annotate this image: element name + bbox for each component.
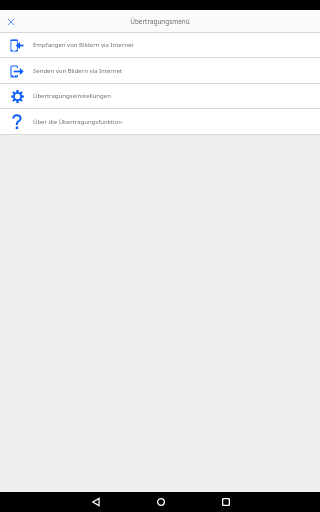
button[interactable]: Close xyxy=(3,14,19,30)
button[interactable]: Senden von Bildern via Internet xyxy=(0,58,320,83)
button[interactable]: Recent apps xyxy=(193,492,258,512)
button[interactable]: Home xyxy=(128,492,193,512)
button[interactable]: Über die Übertragungsfunktion xyxy=(0,109,320,134)
staticText: Über die Übertragungsfunktion xyxy=(33,118,122,126)
staticText: Übertragungseinstellungen xyxy=(33,92,111,100)
button[interactable]: Empfangen von Bildern via Internet xyxy=(0,33,320,57)
button[interactable]: Übertragungseinstellungen xyxy=(0,84,320,108)
staticText: Übertragungsmenü xyxy=(130,17,190,26)
staticText: Empfangen von Bildern via Internet xyxy=(33,41,134,49)
button[interactable]: Back xyxy=(63,492,128,512)
staticText: Senden von Bildern via Internet xyxy=(33,67,123,75)
